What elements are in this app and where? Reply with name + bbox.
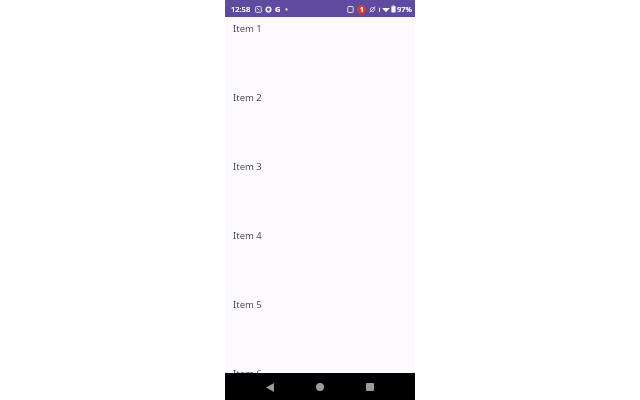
staticText: Item 5 xyxy=(233,298,262,311)
staticText: 12:58 xyxy=(231,4,251,14)
button[interactable]: Item 5 xyxy=(225,293,415,362)
button[interactable]: Item 6 xyxy=(225,362,415,373)
staticText: Item 3 xyxy=(233,160,262,173)
button[interactable]: Item 1 xyxy=(225,17,415,86)
staticText: Item 2 xyxy=(233,91,262,104)
button[interactable]: Back xyxy=(259,376,281,398)
staticText: Item 1 xyxy=(233,22,262,35)
staticText: Item 6 xyxy=(233,367,262,378)
button[interactable]: Home xyxy=(309,376,331,398)
button[interactable]: Item 3 xyxy=(225,155,415,224)
button[interactable]: Recent apps xyxy=(359,376,381,398)
staticText: 1 xyxy=(360,5,364,14)
button[interactable]: Item 4 xyxy=(225,224,415,293)
button[interactable]: Item 2 xyxy=(225,86,415,155)
staticText: Item 4 xyxy=(233,229,262,242)
staticText: 97% xyxy=(397,4,412,14)
staticText: G xyxy=(275,4,281,14)
